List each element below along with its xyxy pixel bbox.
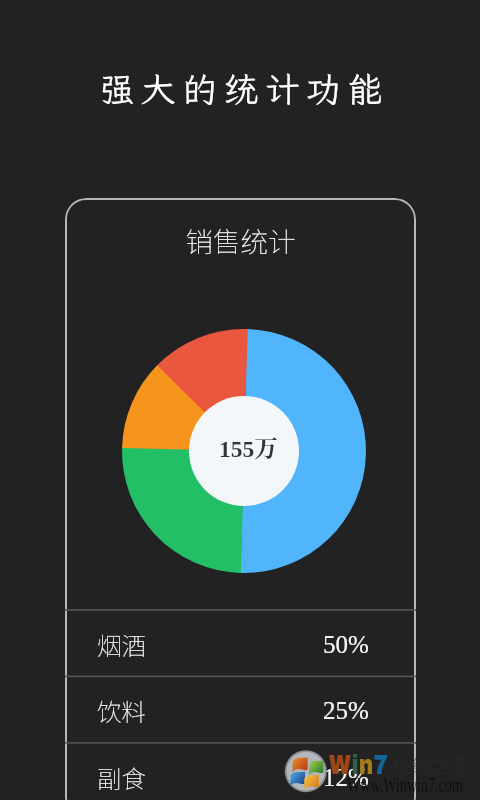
button[interactable]: 饮料 (65, 677, 416, 742)
staticText: 烟酒 (97, 627, 146, 662)
staticText: 销售统计 (65, 220, 416, 260)
staticText: Www.Winwin7.com (347, 772, 463, 796)
staticText: Win7 (329, 749, 388, 779)
staticText: 饮料 (97, 693, 146, 728)
staticText: 25% (323, 697, 369, 725)
staticText: 强大的统计功能 (4, 66, 480, 112)
staticText: 12% (323, 764, 369, 792)
staticText: 155万 (219, 430, 278, 464)
staticText: 副食 (97, 760, 146, 795)
staticText: 50% (323, 631, 369, 659)
staticText: 系统之家 (391, 750, 471, 779)
button[interactable]: 副食 (65, 744, 416, 800)
button[interactable]: 销售统计 (65, 198, 416, 800)
button[interactable]: 烟酒 (65, 611, 416, 676)
